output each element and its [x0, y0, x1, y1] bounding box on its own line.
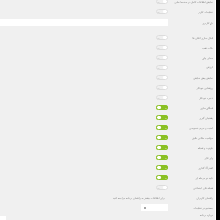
button[interactable]: Enabled [156, 175, 168, 180]
staticText: بله [165, 137, 167, 139]
button[interactable]: Disabled [156, 85, 168, 90]
staticText: بله [165, 147, 167, 149]
staticText: بله [165, 167, 167, 169]
staticText: نمایش اطلاعات کامل در صفحه اصلی [168, 0, 213, 3]
staticText: خیر [157, 187, 160, 189]
staticText: خیر [157, 97, 160, 99]
button[interactable]: Enabled [0, 132, 220, 142]
button[interactable]: Enabled [0, 152, 220, 162]
staticText: نمایش پیش نمایش [168, 76, 213, 79]
staticText: بله [165, 117, 167, 119]
staticText: نام کاربری [168, 21, 213, 24]
staticText: وای فای [168, 156, 213, 159]
button[interactable]: Disabled [0, 62, 220, 72]
staticText: حالت شب [168, 46, 213, 49]
staticText: بله [165, 177, 167, 179]
staticText: بله [165, 127, 167, 129]
staticText: جستجو در تنظیمات [168, 206, 213, 209]
staticText: تنظیمات کاربر [168, 10, 213, 13]
button[interactable]: Disabled [0, 42, 220, 52]
staticText: خیر [157, 11, 160, 13]
staticText: روشنایی خودکار [168, 86, 213, 89]
button[interactable]: نام کاربری [0, 16, 220, 29]
staticText: خیر [157, 47, 160, 49]
button[interactable]: Enabled [156, 135, 168, 140]
button[interactable]: Disabled [0, 92, 220, 102]
button[interactable]: برای اطلاعات بیشتر به راهنمای برنامه مرا… [0, 192, 220, 203]
button[interactable]: Disabled [156, 35, 168, 40]
button[interactable]: Disabled [0, 0, 220, 6]
staticText: اشتراک گذاری [168, 166, 213, 169]
button[interactable]: Enabled [156, 165, 168, 170]
staticText: برای اطلاعات بیشتر به راهنمای برنامه مرا… [113, 196, 165, 199]
button[interactable]: Enabled [156, 115, 168, 120]
staticText: صدای پیام [168, 56, 213, 59]
staticText: موقعیت مکانی دقیق [168, 136, 213, 139]
button[interactable]: Disabled [0, 72, 220, 82]
button[interactable]: Disabled [156, 0, 168, 4]
staticText: فعال سازی اعلان ها [168, 36, 213, 39]
button[interactable]: Enabled [0, 102, 220, 112]
button[interactable]: Enabled [0, 142, 220, 152]
staticText: ذخیره خودکار [168, 96, 213, 99]
staticText: بله [165, 107, 167, 109]
button[interactable]: Disabled [0, 182, 220, 192]
button[interactable]: Disabled [0, 6, 220, 16]
button[interactable]: Disabled [0, 52, 220, 62]
button[interactable]: Enabled [156, 125, 168, 130]
button[interactable]: Enabled [156, 145, 168, 150]
button[interactable]: Enabled [0, 162, 220, 172]
staticText: خیر [157, 1, 160, 3]
button[interactable]: Enabled [156, 155, 168, 160]
button[interactable]: Enabled [0, 122, 220, 132]
button[interactable]: Disabled [156, 185, 168, 190]
staticText: لرزش [168, 66, 213, 69]
button[interactable]: Disabled [0, 32, 220, 42]
staticText: خیر [157, 37, 160, 39]
staticText: خیر [157, 67, 160, 69]
staticText: خیر [157, 87, 160, 89]
button[interactable]: Disabled [156, 55, 168, 60]
staticText: پشتیبان گیری [168, 116, 213, 119]
button[interactable]: Disabled [156, 95, 168, 100]
button[interactable]: Enabled [0, 112, 220, 122]
button[interactable]: Disabled [156, 9, 168, 14]
staticText: شبکه های اجتماعی [168, 186, 213, 189]
staticText: درباره برنامه [0, 213, 213, 216]
staticText: خیر [157, 57, 160, 59]
staticText: همگام سازی [168, 106, 213, 109]
button[interactable]: Disabled [156, 45, 168, 50]
button[interactable]: Search [141, 204, 168, 211]
staticText: راهنمای کاربران [165, 196, 213, 199]
button[interactable]: Disabled [156, 75, 168, 80]
button[interactable]: Disabled [156, 65, 168, 70]
staticText: بله [165, 157, 167, 159]
staticText: خیر [157, 77, 160, 79]
button[interactable]: Enabled [0, 172, 220, 182]
button[interactable]: Enabled [156, 105, 168, 110]
staticText: تایید دو مرحله ای [168, 176, 213, 179]
button[interactable]: Disabled [0, 82, 220, 92]
button[interactable]: درباره برنامه [0, 212, 220, 216]
staticText: امنیت و حریم خصوصی [168, 126, 213, 129]
staticText: بلوتوث و شبکه [168, 146, 213, 149]
